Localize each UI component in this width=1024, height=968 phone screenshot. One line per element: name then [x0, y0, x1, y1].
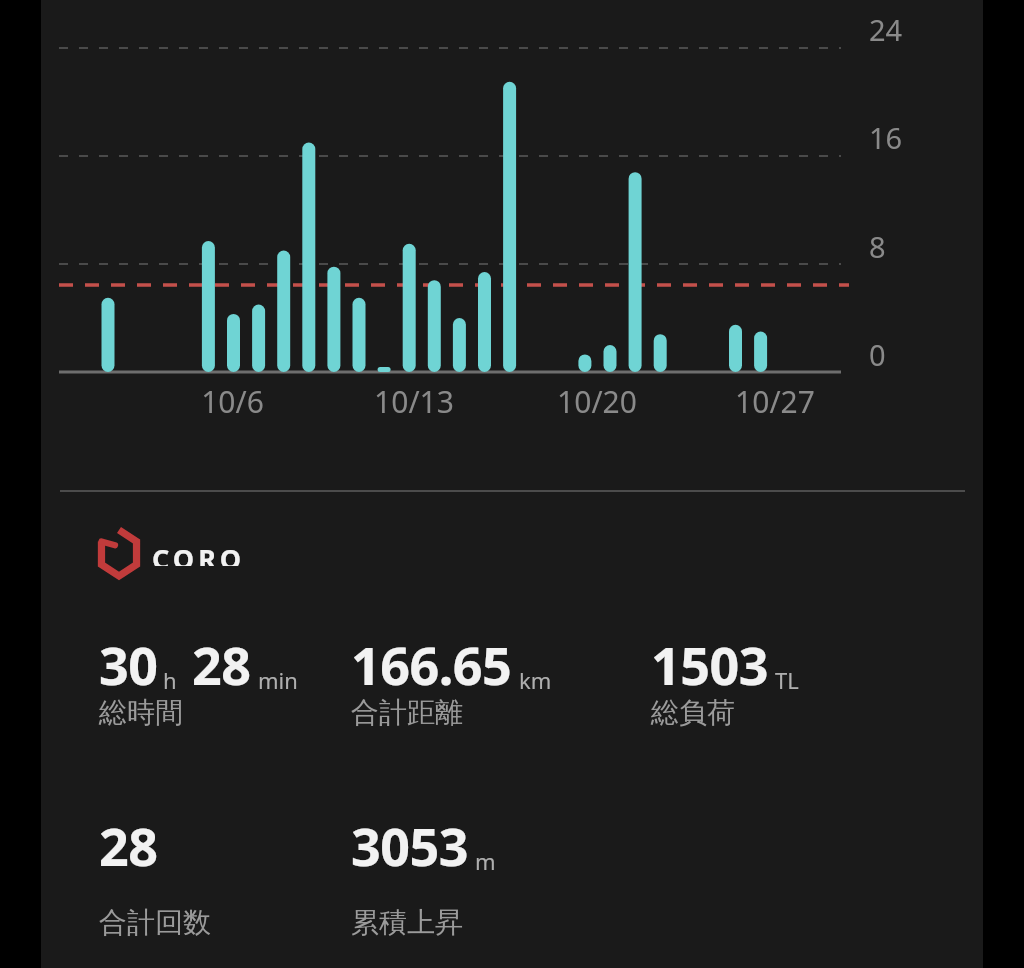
staticText: 8 [869, 227, 886, 266]
button[interactable]: 1503 [651, 629, 799, 700]
staticText: 1503 [651, 629, 768, 700]
staticText: 10/6 [201, 381, 264, 422]
button[interactable]: 30 [99, 629, 298, 700]
staticText: 16 [869, 118, 903, 157]
staticText: 10/27 [735, 381, 815, 422]
staticText: 合計回数 [99, 905, 211, 940]
staticText: min [258, 665, 298, 695]
staticText: 10/20 [557, 381, 637, 422]
staticText: 累積上昇 [351, 905, 463, 940]
staticText: 166.65 [351, 629, 512, 700]
staticText: 0 [869, 335, 886, 374]
staticText: COROS [152, 540, 262, 566]
staticText: m [475, 846, 496, 876]
button[interactable]: 28 [99, 810, 158, 881]
staticText: TL [775, 665, 799, 695]
other: COROS [97, 530, 141, 576]
staticText: 3053 [351, 810, 468, 881]
staticText: 総負荷 [651, 695, 735, 730]
staticText: 28 [192, 629, 251, 700]
staticText: 10/13 [374, 381, 454, 422]
staticText: 30 [99, 629, 158, 700]
button[interactable]: COROS [97, 530, 262, 576]
button[interactable]: 3053 [351, 810, 496, 881]
button[interactable]: 166.65 [351, 629, 552, 700]
staticText: 24 [869, 10, 903, 49]
staticText: 28 [99, 810, 158, 881]
staticText: 総時間 [99, 695, 183, 730]
staticText: h [163, 665, 177, 695]
staticText: 合計距離 [351, 695, 463, 730]
staticText: km [519, 665, 552, 695]
